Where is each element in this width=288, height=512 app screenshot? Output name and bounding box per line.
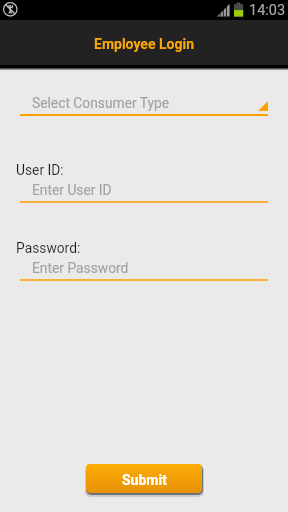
staticText: Submit bbox=[122, 472, 167, 488]
staticText: User ID: bbox=[16, 162, 64, 178]
button[interactable]: Select Consumer Type bbox=[20, 89, 268, 118]
button[interactable]: Enter User ID bbox=[20, 182, 268, 198]
staticText: Enter User ID bbox=[32, 182, 112, 198]
button[interactable]: Submit bbox=[86, 464, 202, 493]
staticText: Select Consumer Type bbox=[32, 95, 170, 111]
button[interactable]: Enter Password bbox=[20, 260, 268, 276]
other: Silent mode bbox=[3, 2, 19, 18]
staticText: Password: bbox=[16, 240, 81, 256]
staticText: Employee Login bbox=[94, 36, 195, 52]
staticText: 14:03 bbox=[249, 2, 286, 19]
staticText: Enter Password bbox=[32, 260, 129, 276]
